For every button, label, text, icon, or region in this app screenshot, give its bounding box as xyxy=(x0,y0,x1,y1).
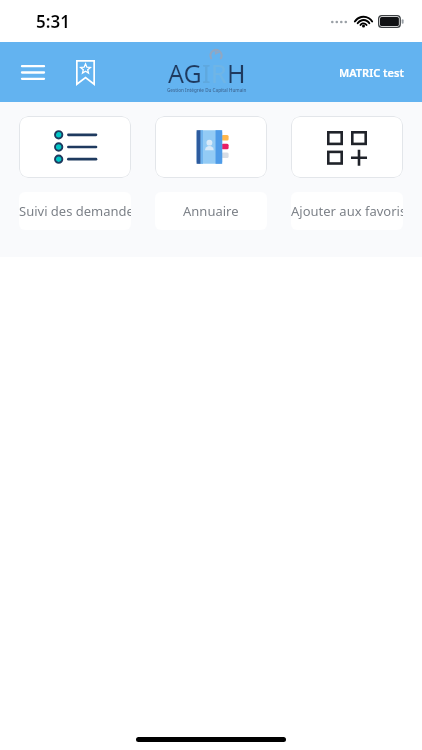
staticText: AG xyxy=(168,56,202,90)
button[interactable]: Ajouter aux favoris xyxy=(291,116,403,230)
staticText: H xyxy=(227,56,246,90)
staticText: I xyxy=(202,56,211,90)
staticText: 5:31 xyxy=(36,10,70,33)
staticText: R xyxy=(211,56,227,90)
button[interactable]: Suivi des demandes xyxy=(19,116,131,230)
staticText: Gestion Intégrée Du Capital Humain xyxy=(167,87,247,93)
staticText: Suivi des demandes xyxy=(19,202,131,220)
staticText: Annuaire xyxy=(183,202,239,220)
button[interactable]: Annuaire xyxy=(155,116,267,230)
button[interactable]: Menu xyxy=(14,53,52,91)
staticText: Ajouter aux favoris xyxy=(291,202,403,220)
button[interactable]: Favorites xyxy=(66,53,104,91)
staticText: MATRIC test xyxy=(339,65,404,80)
